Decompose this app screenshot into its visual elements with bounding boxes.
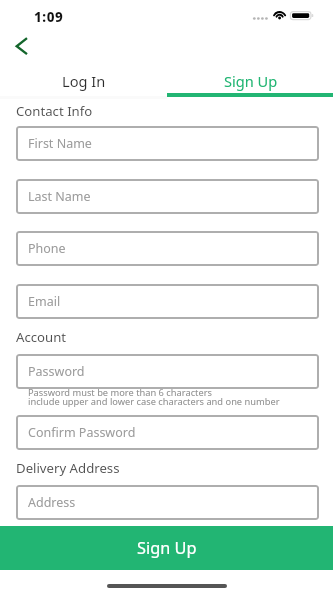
staticText: Sign Up bbox=[137, 537, 197, 559]
button[interactable]: Phone bbox=[16, 231, 319, 266]
staticText: Account bbox=[16, 328, 67, 346]
staticText: Password must be more than 6 characters … bbox=[28, 386, 280, 407]
staticText: Log In bbox=[62, 71, 106, 91]
staticText: Sign Up bbox=[224, 71, 278, 91]
button[interactable]: Confirm Password bbox=[16, 415, 319, 450]
button[interactable]: Password bbox=[16, 354, 319, 389]
button[interactable]: Back bbox=[4, 30, 40, 60]
button[interactable]: Email bbox=[16, 284, 319, 319]
staticText: Contact Info bbox=[16, 102, 93, 120]
button[interactable]: Address bbox=[16, 485, 319, 520]
staticText: Password bbox=[28, 363, 85, 380]
staticText: Email bbox=[28, 293, 61, 310]
staticText: Delivery Address bbox=[16, 459, 120, 477]
button[interactable]: Last Name bbox=[16, 179, 319, 214]
button[interactable]: First Name bbox=[16, 126, 319, 161]
staticText: Phone bbox=[28, 240, 66, 257]
button[interactable]: Log In bbox=[1, 67, 167, 94]
button[interactable]: Sign Up bbox=[0, 526, 333, 570]
staticText: Last Name bbox=[28, 188, 91, 205]
staticText: First Name bbox=[28, 135, 92, 152]
staticText: Address bbox=[28, 494, 76, 511]
button[interactable]: Sign Up bbox=[167, 67, 333, 94]
staticText: Confirm Password bbox=[28, 424, 136, 441]
staticText: 1:09 bbox=[34, 8, 64, 26]
